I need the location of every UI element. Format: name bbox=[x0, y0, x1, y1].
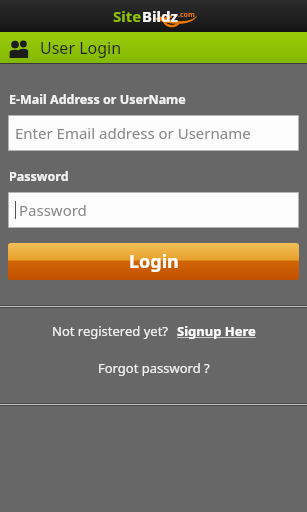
staticText: Site bbox=[113, 6, 142, 26]
button[interactable]: Login bbox=[8, 243, 299, 280]
button[interactable]: Enter Email address or Username bbox=[8, 115, 299, 151]
staticText: Login bbox=[129, 249, 179, 274]
staticText: Enter Email address or Username bbox=[15, 123, 251, 143]
staticText: Password bbox=[19, 200, 87, 220]
button[interactable]: Password bbox=[8, 192, 299, 228]
button[interactable]: Forgot password ? bbox=[0, 359, 307, 377]
staticText: .com bbox=[178, 10, 195, 20]
staticText: Forgot password ? bbox=[98, 359, 210, 377]
staticText: Signup Here bbox=[177, 322, 256, 340]
button[interactable]: Not registered yet? bbox=[0, 322, 307, 340]
staticText: Not registered yet? bbox=[52, 322, 168, 340]
staticText: Password bbox=[9, 168, 69, 185]
staticText: User Login bbox=[40, 37, 122, 59]
staticText: Bildz bbox=[142, 6, 178, 26]
other: User bbox=[8, 38, 30, 58]
other: SiteBildz.com logo bbox=[102, 4, 206, 28]
staticText: E-Mail Address or UserName bbox=[9, 91, 186, 108]
